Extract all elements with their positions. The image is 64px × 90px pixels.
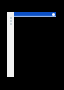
button[interactable]: Account [52, 13, 55, 16]
button[interactable] [7, 16, 14, 19]
button[interactable]: Account [14, 12, 56, 17]
button[interactable] [7, 19, 14, 22]
button[interactable] [7, 22, 14, 25]
